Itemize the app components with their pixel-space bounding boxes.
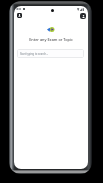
button[interactable]: App logo: [17, 13, 22, 18]
button[interactable]: Account: [80, 13, 86, 19]
staticText: Enter any Exam or Topic: [14, 37, 88, 42]
staticText: Start typing to search...: [20, 52, 49, 56]
button[interactable]: Start typing to search...: [17, 49, 84, 58]
